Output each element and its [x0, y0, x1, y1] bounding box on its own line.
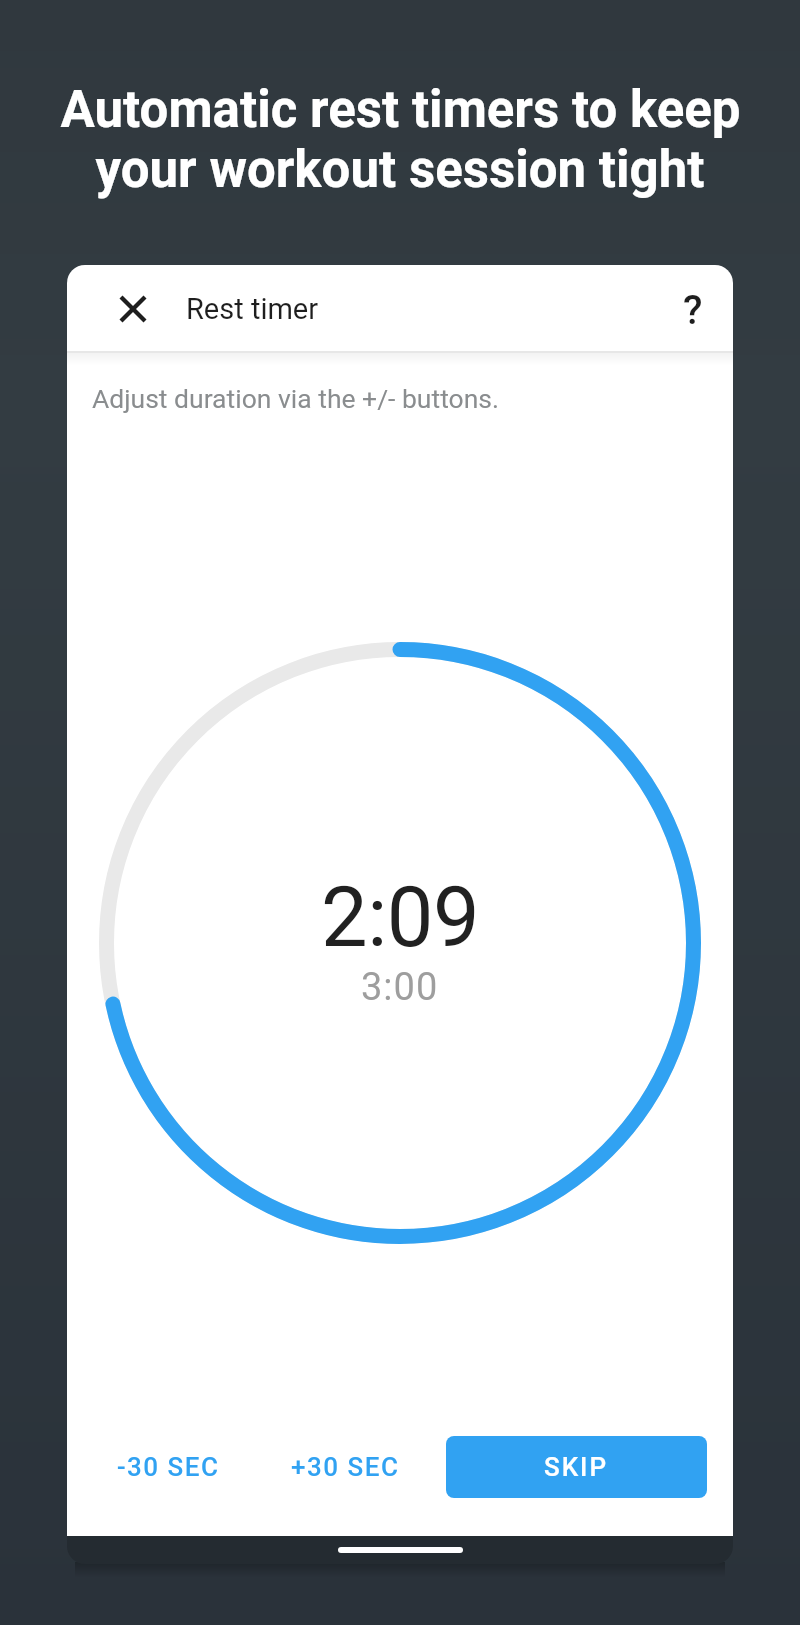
button[interactable]: [109, 285, 157, 333]
staticText: +30 SEC: [291, 1452, 400, 1482]
staticText: Rest timer: [186, 292, 319, 326]
staticText: Adjust duration via the +/- buttons.: [92, 383, 499, 414]
button[interactable]: +30 SEC: [279, 1435, 412, 1498]
button[interactable]: -30 SEC: [105, 1435, 232, 1498]
staticText: SKIP: [544, 1452, 609, 1482]
button[interactable]: ?: [671, 287, 715, 331]
staticText: 2:09: [321, 869, 480, 966]
staticText: ?: [683, 287, 703, 331]
button[interactable]: SKIP: [446, 1436, 707, 1498]
staticText: 3:00: [361, 965, 439, 1010]
staticText: Automatic rest timers to keep: [60, 80, 741, 140]
staticText: your workout session tight: [95, 140, 705, 200]
staticText: -30 SEC: [117, 1452, 220, 1482]
